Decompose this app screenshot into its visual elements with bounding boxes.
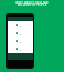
other: Category [16, 24, 18, 26]
button[interactable]: Category [8, 29, 33, 37]
button[interactable]: Category [8, 45, 33, 53]
other: Category [16, 32, 18, 34]
staticText: MOST WIDELY USED AND MILLIONS OF PEOPLE [0, 1, 64, 7]
other: Category [16, 40, 18, 42]
button[interactable]: Category [8, 21, 33, 29]
button[interactable]: Category [8, 37, 33, 45]
other: Category [16, 48, 18, 50]
